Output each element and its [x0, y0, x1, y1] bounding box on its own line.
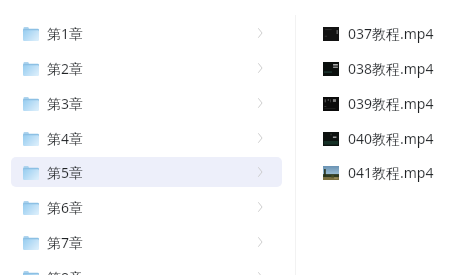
other: Open folder	[257, 28, 263, 38]
button[interactable]: 038教程.mp4	[313, 53, 445, 83]
button[interactable]: 第7章	[11, 227, 282, 257]
button[interactable]: 第5章	[11, 157, 282, 187]
button[interactable]: 040教程.mp4	[313, 123, 445, 153]
button[interactable]: 第3章	[11, 88, 282, 118]
other: Open folder	[257, 167, 263, 177]
staticText: 038教程.mp4	[348, 59, 434, 78]
button[interactable]: 第8章	[11, 262, 282, 275]
other: Open folder	[257, 202, 263, 212]
other: Open folder	[257, 98, 263, 108]
button[interactable]: 第4章	[11, 123, 282, 153]
staticText: 第8章	[47, 268, 84, 275]
staticText: 第5章	[47, 163, 84, 182]
other: Open folder	[257, 272, 263, 275]
staticText: 第6章	[47, 198, 84, 217]
staticText: 041教程.mp4	[348, 163, 434, 182]
button[interactable]: 039教程.mp4	[313, 88, 445, 118]
staticText: 第1章	[47, 24, 84, 43]
staticText: 037教程.mp4	[348, 24, 434, 43]
button[interactable]: 041教程.mp4	[313, 157, 445, 187]
other: Open folder	[257, 237, 263, 247]
other: Open folder	[257, 63, 263, 73]
staticText: 040教程.mp4	[348, 129, 434, 148]
button[interactable]: 第6章	[11, 192, 282, 222]
button[interactable]: 037教程.mp4	[313, 18, 445, 48]
button[interactable]: 第1章	[11, 18, 282, 48]
staticText: 039教程.mp4	[348, 94, 434, 113]
staticText: 第3章	[47, 94, 84, 113]
button[interactable]: 第2章	[11, 53, 282, 83]
staticText: 第2章	[47, 59, 84, 78]
staticText: 第4章	[47, 129, 84, 148]
other: Open folder	[257, 133, 263, 143]
staticText: 第7章	[47, 233, 84, 252]
